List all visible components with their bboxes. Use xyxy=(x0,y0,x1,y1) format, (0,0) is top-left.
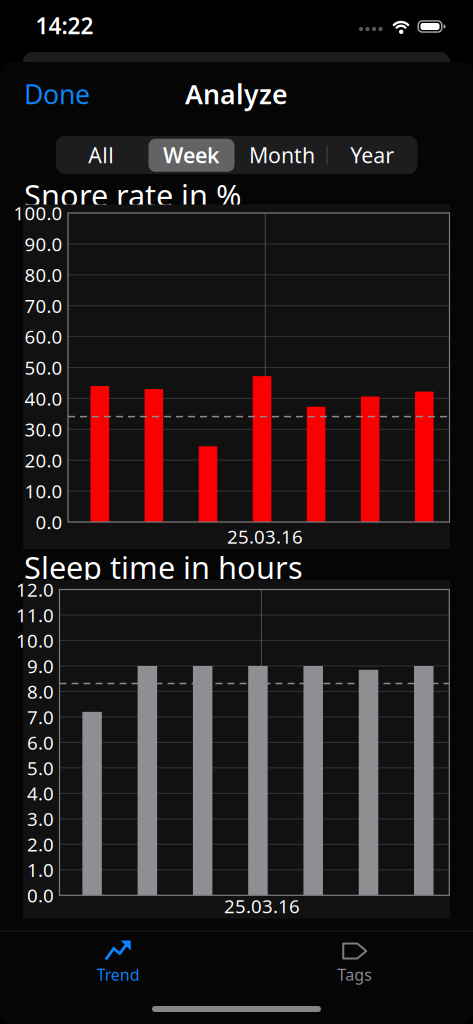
staticText: 70.0 xyxy=(24,293,62,318)
staticText: 50.0 xyxy=(24,355,62,380)
staticText: 1.0 xyxy=(27,857,54,882)
staticText: Sleep time in hours xyxy=(24,547,303,587)
staticText: 5.0 xyxy=(27,755,54,780)
staticText: 2.0 xyxy=(27,832,54,857)
staticText: 10.0 xyxy=(24,479,62,503)
staticText: 60.0 xyxy=(24,324,62,349)
staticText: 6.0 xyxy=(27,730,54,755)
staticText: 12.0 xyxy=(16,577,54,602)
staticText: Snore rate in % xyxy=(24,175,241,215)
button[interactable]: Trend xyxy=(59,931,177,991)
staticText: Analyze xyxy=(185,76,288,112)
staticText: Month xyxy=(249,141,315,169)
staticText: 25.03.16 xyxy=(227,524,303,549)
button[interactable]: Tags xyxy=(296,931,414,991)
staticText: 4.0 xyxy=(27,781,54,806)
staticText: 10.0 xyxy=(16,628,54,653)
staticText: Trend xyxy=(97,964,140,985)
staticText: 8.0 xyxy=(27,679,54,704)
staticText: 7.0 xyxy=(27,704,54,729)
staticText: Week xyxy=(163,141,220,169)
staticText: 80.0 xyxy=(24,262,62,287)
button[interactable]: All xyxy=(56,136,146,174)
staticText: 100.0 xyxy=(13,201,62,225)
staticText: Done xyxy=(24,76,90,112)
button[interactable]: Done xyxy=(24,79,104,109)
button[interactable]: Month xyxy=(237,136,327,174)
button[interactable]: Year xyxy=(327,136,417,174)
staticText: 90.0 xyxy=(24,231,62,256)
staticText: 25.03.16 xyxy=(224,894,300,918)
staticText: 0.0 xyxy=(27,883,54,908)
staticText: All xyxy=(88,141,114,169)
staticText: 14:22 xyxy=(35,10,93,40)
staticText: 40.0 xyxy=(24,386,62,411)
staticText: 0.0 xyxy=(35,510,62,534)
staticText: 20.0 xyxy=(24,448,62,473)
staticText: 9.0 xyxy=(27,654,54,678)
staticText: 11.0 xyxy=(16,603,54,627)
staticText: Tags xyxy=(337,964,372,985)
staticText: 30.0 xyxy=(24,417,62,442)
button[interactable]: Week xyxy=(146,136,236,174)
staticText: 3.0 xyxy=(27,806,54,831)
staticText: Year xyxy=(350,141,394,169)
